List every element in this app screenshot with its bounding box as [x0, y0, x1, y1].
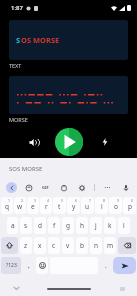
staticText: l [123, 221, 125, 230]
staticText: b [80, 241, 84, 250]
staticText: 4 [47, 198, 50, 203]
button[interactable]: x [34, 237, 46, 254]
staticText: 7 [89, 198, 92, 203]
button[interactable]: 1 [1, 197, 13, 214]
staticText: s [24, 221, 28, 230]
staticText: k [108, 221, 112, 230]
button[interactable]: g [62, 217, 74, 234]
button[interactable]: Back [6, 182, 17, 193]
staticText: . [105, 262, 107, 270]
staticText: j [95, 221, 97, 230]
button[interactable]: S [9, 20, 128, 60]
button[interactable]: Stickers [23, 182, 34, 193]
button[interactable]: Settings [76, 182, 87, 193]
button[interactable]: Back [14, 286, 19, 291]
button[interactable]: a [7, 217, 18, 234]
staticText: 1:87 [11, 4, 23, 12]
staticText: 0 [131, 198, 134, 203]
button[interactable]: 0 [123, 197, 136, 214]
button[interactable]: j [90, 217, 102, 234]
staticText: w [17, 202, 23, 211]
staticText: o [114, 202, 118, 211]
staticText: u [85, 202, 90, 211]
staticText: h [80, 221, 85, 230]
staticText: f [53, 221, 56, 230]
button[interactable]: Flashlight [95, 132, 115, 152]
button[interactable]: v [62, 237, 74, 254]
button[interactable] [9, 76, 128, 114]
button[interactable]: Shift [1, 237, 18, 254]
staticText: MORSE [9, 116, 28, 123]
staticText: 8 [103, 198, 106, 203]
staticText: GIF [42, 185, 49, 190]
button[interactable]: z [20, 237, 32, 254]
staticText: SOS MORSE [9, 165, 43, 173]
button[interactable]: Backspace [118, 237, 136, 254]
staticText: 9 [117, 198, 120, 203]
staticText: x [38, 241, 42, 250]
button[interactable]: 3 [27, 197, 39, 214]
button[interactable]: s [20, 217, 32, 234]
staticText: a [11, 221, 15, 230]
staticText: i [101, 202, 103, 211]
button[interactable]: GIF [40, 182, 51, 193]
button[interactable]: 7 [81, 197, 94, 214]
button[interactable]: 2 [14, 197, 26, 214]
button[interactable]: SOS MORSE [9, 165, 43, 173]
staticText: 3 [34, 198, 37, 203]
staticText: y [72, 202, 76, 211]
staticText: e [31, 202, 35, 211]
staticText: , [28, 262, 30, 270]
button[interactable]: ?123 [1, 257, 21, 274]
staticText: 5 [61, 198, 64, 203]
staticText: v [66, 241, 70, 250]
staticText: p [128, 202, 132, 211]
button[interactable]: . [100, 257, 111, 274]
button[interactable]: , [23, 257, 34, 274]
staticText: 6 [75, 198, 78, 203]
staticText: d [38, 221, 42, 230]
staticText: c [52, 241, 56, 250]
staticText: ?123 [6, 262, 17, 269]
button[interactable]: Send [113, 257, 136, 274]
button[interactable]: Clipboard [58, 182, 69, 193]
staticText: OS MORSE [21, 35, 60, 45]
button[interactable]: 4 [40, 197, 52, 214]
staticText: 1 [8, 198, 11, 203]
button[interactable]: n [90, 237, 102, 254]
staticText: S [16, 35, 21, 45]
staticText: m [107, 241, 114, 250]
staticText: t [58, 202, 61, 211]
staticText: 2 [21, 198, 24, 203]
button[interactable]: Play [55, 128, 83, 156]
button[interactable]: Sound [23, 132, 43, 152]
staticText: z [24, 241, 28, 250]
button[interactable]: 5 [53, 197, 66, 214]
button[interactable]: Emoji [36, 257, 48, 274]
staticText: r [45, 202, 48, 211]
button[interactable]: 9 [109, 197, 122, 214]
button[interactable]: k [104, 217, 116, 234]
staticText: TEXT [9, 62, 22, 69]
button[interactable]: m [104, 237, 116, 254]
button[interactable]: f [48, 217, 60, 234]
button[interactable]: 8 [95, 197, 108, 214]
button[interactable]: b [76, 237, 88, 254]
button[interactable]: l [118, 217, 130, 234]
button[interactable]: d [34, 217, 46, 234]
button[interactable]: More [102, 182, 113, 193]
button[interactable]: 6 [67, 197, 80, 214]
staticText: n [94, 241, 99, 250]
button[interactable]: c [48, 237, 60, 254]
button[interactable]: h [76, 217, 88, 234]
staticText: q [5, 202, 9, 211]
staticText: g [66, 221, 70, 230]
button[interactable]: Voice input [120, 182, 131, 193]
